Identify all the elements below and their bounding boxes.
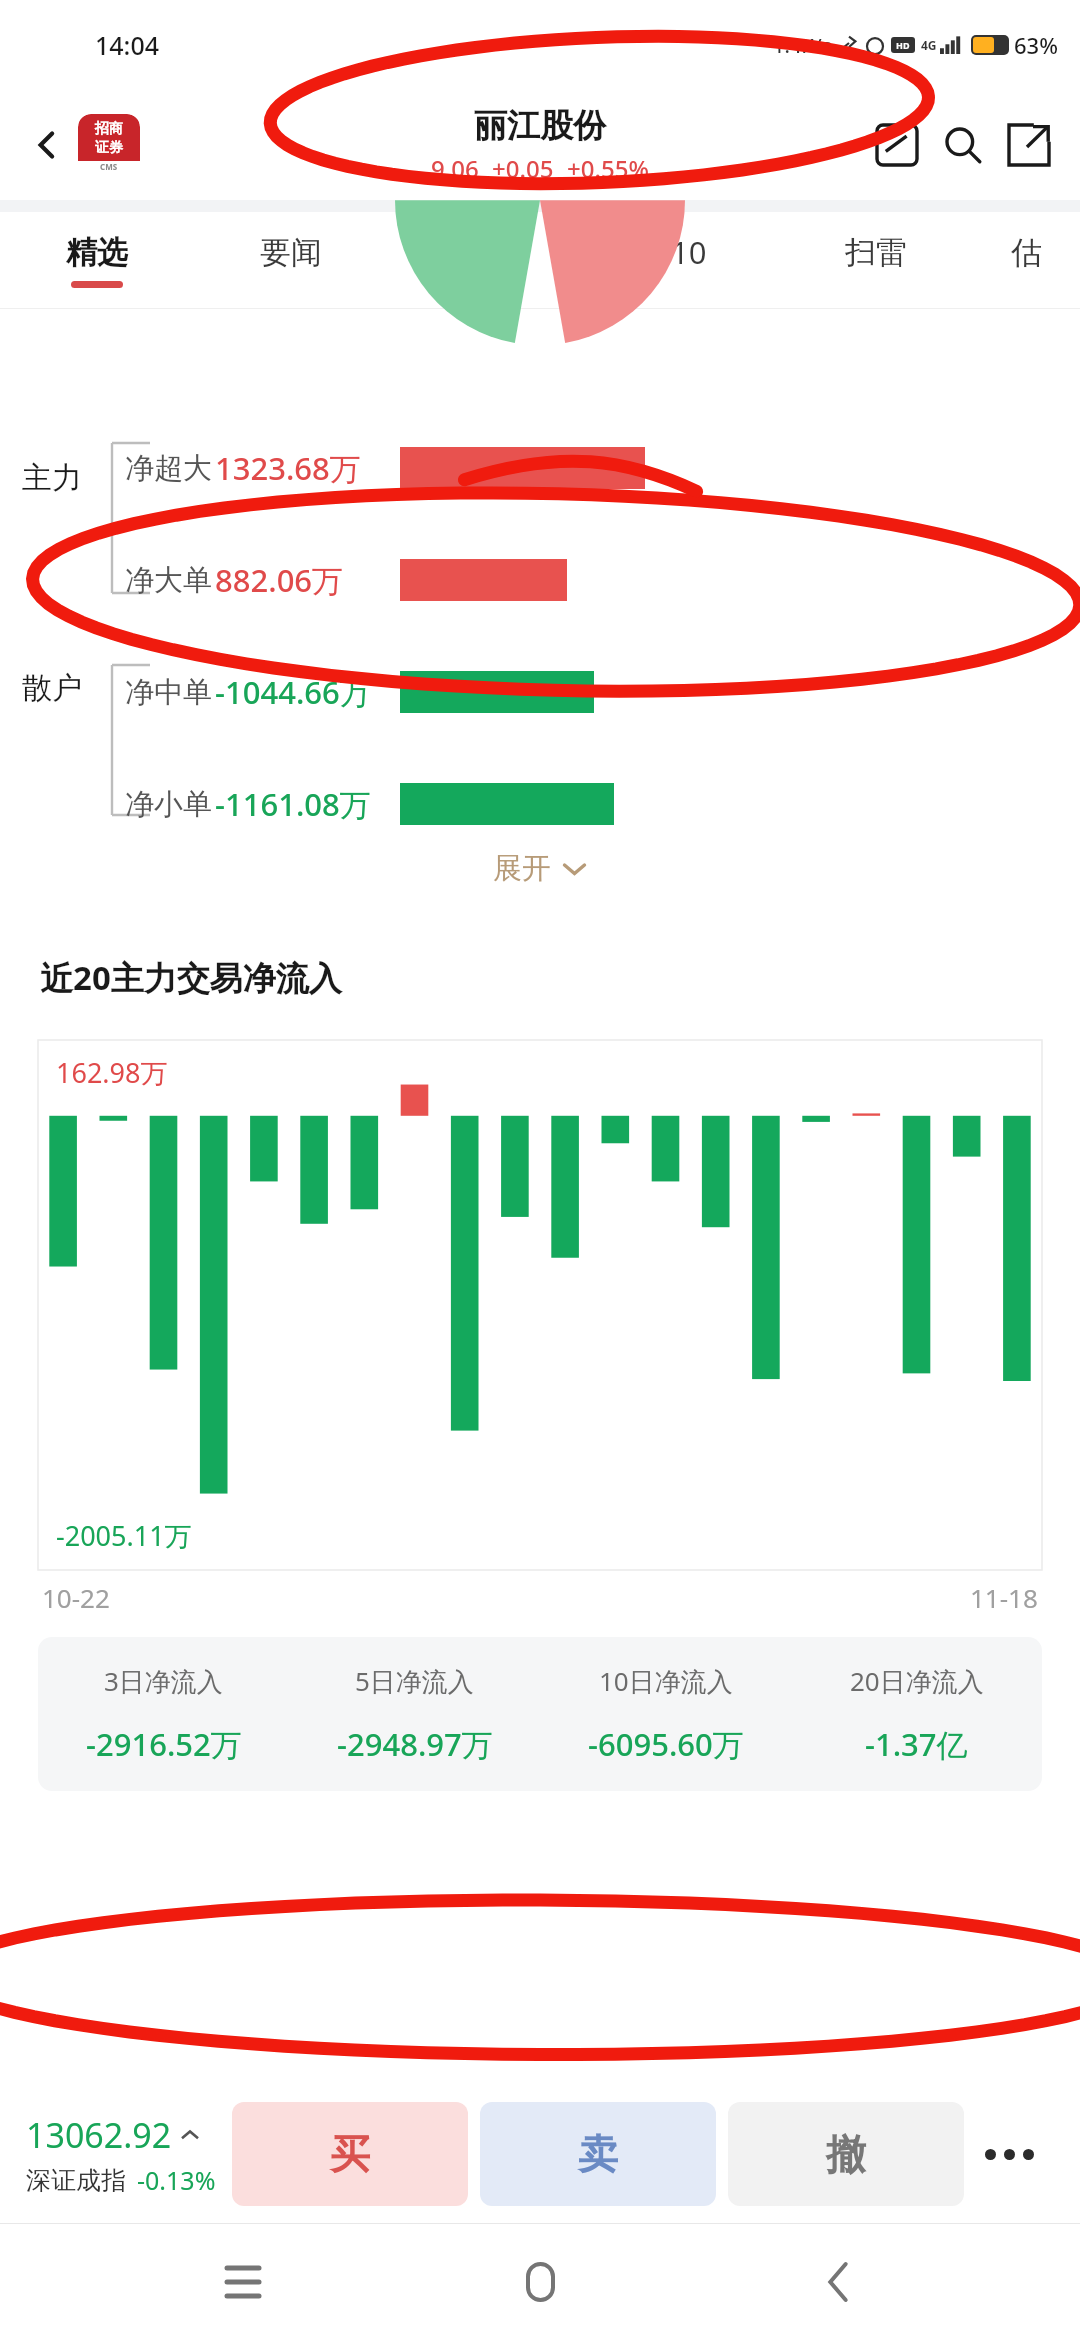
button[interactable]: 精选	[0, 212, 194, 308]
button[interactable]: 讨论	[388, 212, 583, 308]
button[interactable]: 20日净流入	[791, 1663, 1042, 1765]
staticText: 买	[330, 2129, 370, 2179]
staticText: 14:04	[95, 28, 160, 62]
button[interactable]: 10日净流入	[540, 1663, 791, 1765]
staticText: 散户	[22, 669, 82, 707]
button[interactable]: Home	[485, 2227, 595, 2337]
button[interactable]: 估	[973, 212, 1080, 308]
staticText: +0.55%	[567, 152, 649, 185]
button[interactable]: 卖	[480, 2102, 716, 2206]
staticText: CMS	[100, 161, 118, 172]
staticText: 丽江股份	[474, 105, 606, 147]
staticText: -6095.60万	[588, 1723, 744, 1765]
button[interactable]: Recents	[188, 2227, 298, 2337]
button[interactable]: 净超大	[0, 423, 1080, 513]
staticText: 主力	[22, 459, 82, 497]
staticText: 4G	[921, 37, 937, 53]
staticText: 882.06万	[215, 559, 344, 601]
button[interactable]: 3日净流入	[38, 1663, 289, 1765]
staticText: 净小单	[125, 786, 212, 823]
staticText: 9.06	[431, 152, 479, 185]
button[interactable]: Back	[16, 114, 78, 176]
staticText: 3日净流入	[104, 1663, 223, 1699]
button[interactable]: More	[964, 2085, 1054, 2223]
staticText: 净超大	[125, 450, 212, 487]
staticText: -0.13%	[137, 2163, 216, 2197]
button[interactable]: 展开	[0, 823, 1080, 913]
staticText: +0.05	[492, 152, 554, 185]
button[interactable]: 买	[232, 2102, 468, 2206]
button[interactable]: 净中单	[0, 647, 1080, 737]
button[interactable]: 13062.92	[26, 2112, 216, 2197]
staticText: -2005.11万	[56, 1517, 192, 1554]
button[interactable]: 5日净流入	[289, 1663, 540, 1765]
staticText: 1323.68万	[215, 447, 361, 489]
button[interactable]: Share	[996, 112, 1062, 178]
staticText: 招商 证券	[95, 120, 123, 156]
staticText: 11-18	[970, 1580, 1038, 1615]
staticText: 扫雷	[845, 233, 907, 272]
staticText: 精选	[66, 233, 128, 272]
staticText: F10	[655, 231, 707, 273]
staticText: 估	[1011, 233, 1042, 272]
button[interactable]: 扫雷	[778, 212, 973, 308]
staticText: 1.4K/s	[773, 32, 832, 59]
staticText: -1161.08万	[215, 783, 371, 825]
button[interactable]: F10	[583, 212, 778, 308]
button[interactable]: 净大单	[0, 535, 1080, 625]
staticText: 卖	[578, 2129, 618, 2179]
staticText: 净中单	[125, 674, 212, 711]
staticText: 近20主力交易净流入	[40, 955, 342, 1000]
staticText: 10-22	[42, 1580, 110, 1615]
staticText: 展开	[493, 850, 551, 887]
button[interactable]: 撤	[728, 2102, 964, 2206]
staticText: 要闻	[260, 233, 322, 272]
staticText: 162.98万	[56, 1054, 168, 1091]
button[interactable]: Edit	[864, 112, 930, 178]
staticText: 20日净流入	[850, 1663, 984, 1699]
staticText: -2948.97万	[337, 1723, 493, 1765]
staticText: 5日净流入	[355, 1663, 474, 1699]
staticText: 撤	[826, 2129, 866, 2179]
staticText: -1.37亿	[865, 1723, 968, 1765]
staticText: 10日净流入	[599, 1663, 733, 1699]
staticText: -1044.66万	[215, 671, 371, 713]
staticText: 净大单	[125, 562, 212, 599]
button[interactable]: Back	[783, 2227, 893, 2337]
staticText: 13062.92	[26, 2112, 172, 2158]
staticText: HD	[896, 39, 910, 51]
staticText: 63%	[1014, 30, 1058, 60]
button[interactable]: 净小单	[0, 759, 1080, 849]
button[interactable]: 要闻	[194, 212, 388, 308]
staticText: 深证成指	[26, 2165, 126, 2196]
button[interactable]: Search	[930, 112, 996, 178]
staticText: -2916.52万	[86, 1723, 242, 1765]
button[interactable]: Broker	[78, 114, 140, 176]
